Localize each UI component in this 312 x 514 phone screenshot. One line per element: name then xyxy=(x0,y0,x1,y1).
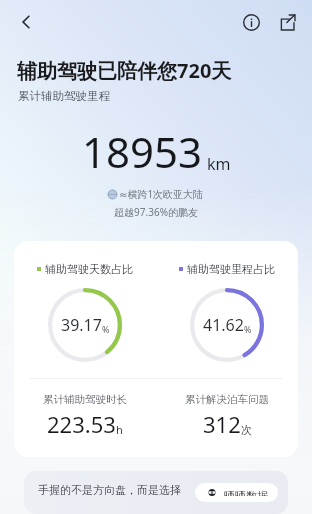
staticText: 辅助驾驶里程占比 xyxy=(187,262,275,276)
staticText: 晒晒数据 xyxy=(224,489,268,496)
staticText: % xyxy=(102,323,110,335)
button[interactable]: Share xyxy=(270,5,304,39)
staticText: 次 xyxy=(241,423,252,437)
staticText: 超越97.36%的鹏友 xyxy=(0,205,312,219)
staticText: 41.62 xyxy=(203,314,244,336)
staticText: 累计解决泊车问题 xyxy=(185,393,269,406)
button[interactable]: 晒晒数据 xyxy=(195,483,278,502)
staticText: 312 xyxy=(203,409,241,439)
staticText: % xyxy=(244,323,252,335)
button[interactable]: Info xyxy=(234,5,268,39)
staticText: 39.17 xyxy=(61,314,102,336)
staticText: h xyxy=(116,422,123,437)
staticText: 辅助驾驶已陪伴您720天 xyxy=(17,57,232,84)
staticText: 18953 xyxy=(82,123,203,180)
button[interactable]: Back xyxy=(8,4,44,40)
staticText: km xyxy=(207,153,231,175)
staticText: ≈横跨1次欧亚大陆 xyxy=(119,187,204,201)
staticText: 辅助驾驶天数占比 xyxy=(45,262,133,276)
staticText: 223.53 xyxy=(47,409,116,439)
staticText: 手握的不是方向盘，而是选择 何时介入的绝对权杖 xyxy=(38,483,189,502)
staticText: 累计辅助驾驶时长 xyxy=(43,393,127,406)
staticText: 累计辅助驾驶里程 xyxy=(18,89,110,103)
